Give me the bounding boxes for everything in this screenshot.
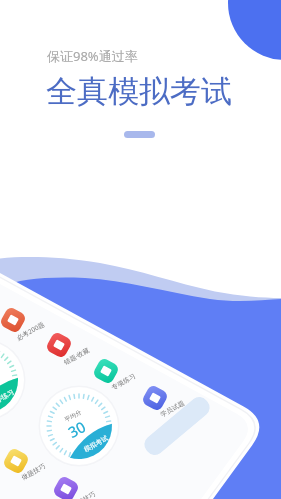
staticText: 全真模拟考试 bbox=[46, 72, 232, 111]
staticText: 保证98%通过率 bbox=[47, 47, 138, 65]
